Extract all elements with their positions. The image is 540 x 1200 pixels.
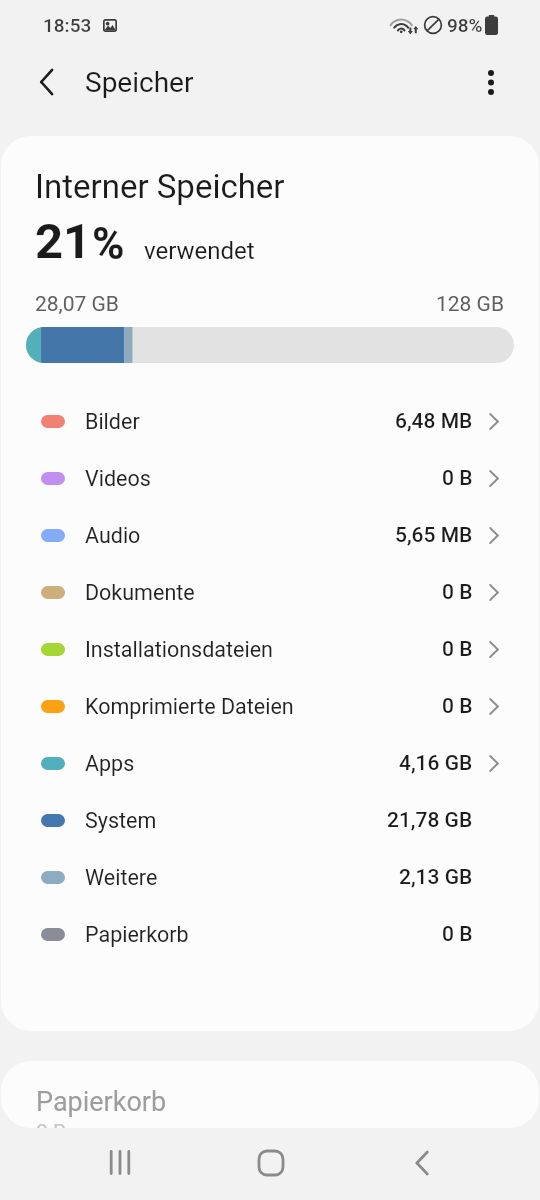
staticText: 0 B xyxy=(442,694,473,719)
staticText: Komprimierte Dateien xyxy=(85,694,294,719)
staticText: Interner Speicher xyxy=(35,167,285,206)
staticText: 28,07 GB xyxy=(35,292,119,317)
staticText: 2,13 GB xyxy=(399,865,473,890)
button[interactable]: Audio xyxy=(1,507,539,564)
staticText: Papierkorb xyxy=(36,1086,167,1118)
staticText: Videos xyxy=(85,466,151,491)
staticText: % xyxy=(92,218,125,270)
button[interactable]: Bilder xyxy=(1,393,539,450)
staticText: 0 B xyxy=(36,1120,67,1128)
staticText: 5,65 MB xyxy=(395,523,473,548)
button[interactable]: Komprimierte Dateien xyxy=(1,678,539,735)
staticText: Bilder xyxy=(85,409,140,434)
button[interactable]: Back xyxy=(17,52,77,112)
staticText: 0 B xyxy=(442,580,473,605)
staticText: 6,48 MB xyxy=(395,409,473,434)
staticText: Weitere xyxy=(85,865,158,890)
button[interactable]: Weitere xyxy=(1,849,539,906)
button[interactable]: Apps xyxy=(1,735,539,792)
staticText: 98% xyxy=(447,14,483,36)
staticText: 4,16 GB xyxy=(399,751,473,776)
staticText: Dokumente xyxy=(85,580,195,605)
staticText: 128 GB xyxy=(436,292,505,317)
staticText: Installationsdateien xyxy=(85,637,273,662)
staticText: 21 xyxy=(35,213,92,270)
staticText: Audio xyxy=(85,523,141,548)
button[interactable]: Recent apps xyxy=(44,1130,195,1195)
button[interactable]: Installationsdateien xyxy=(1,621,539,678)
staticText: 0 B xyxy=(442,637,473,662)
staticText: 0 B xyxy=(442,922,473,947)
button[interactable]: More options xyxy=(461,52,521,112)
staticText: System xyxy=(85,808,157,833)
staticText: Apps xyxy=(85,751,135,776)
staticText: 18:53 xyxy=(43,14,92,36)
staticText: 0 B xyxy=(442,466,473,491)
button[interactable]: Videos xyxy=(1,450,539,507)
button[interactable]: Dokumente xyxy=(1,564,539,621)
button[interactable]: System xyxy=(1,792,539,849)
staticText: verwendet xyxy=(144,237,255,265)
button[interactable]: Papierkorb xyxy=(1,906,539,963)
staticText: 21,78 GB xyxy=(387,808,473,833)
staticText: Papierkorb xyxy=(85,922,189,947)
staticText: Speicher xyxy=(85,66,194,99)
button[interactable]: Home xyxy=(195,1130,346,1195)
button[interactable]: Back xyxy=(346,1130,497,1195)
